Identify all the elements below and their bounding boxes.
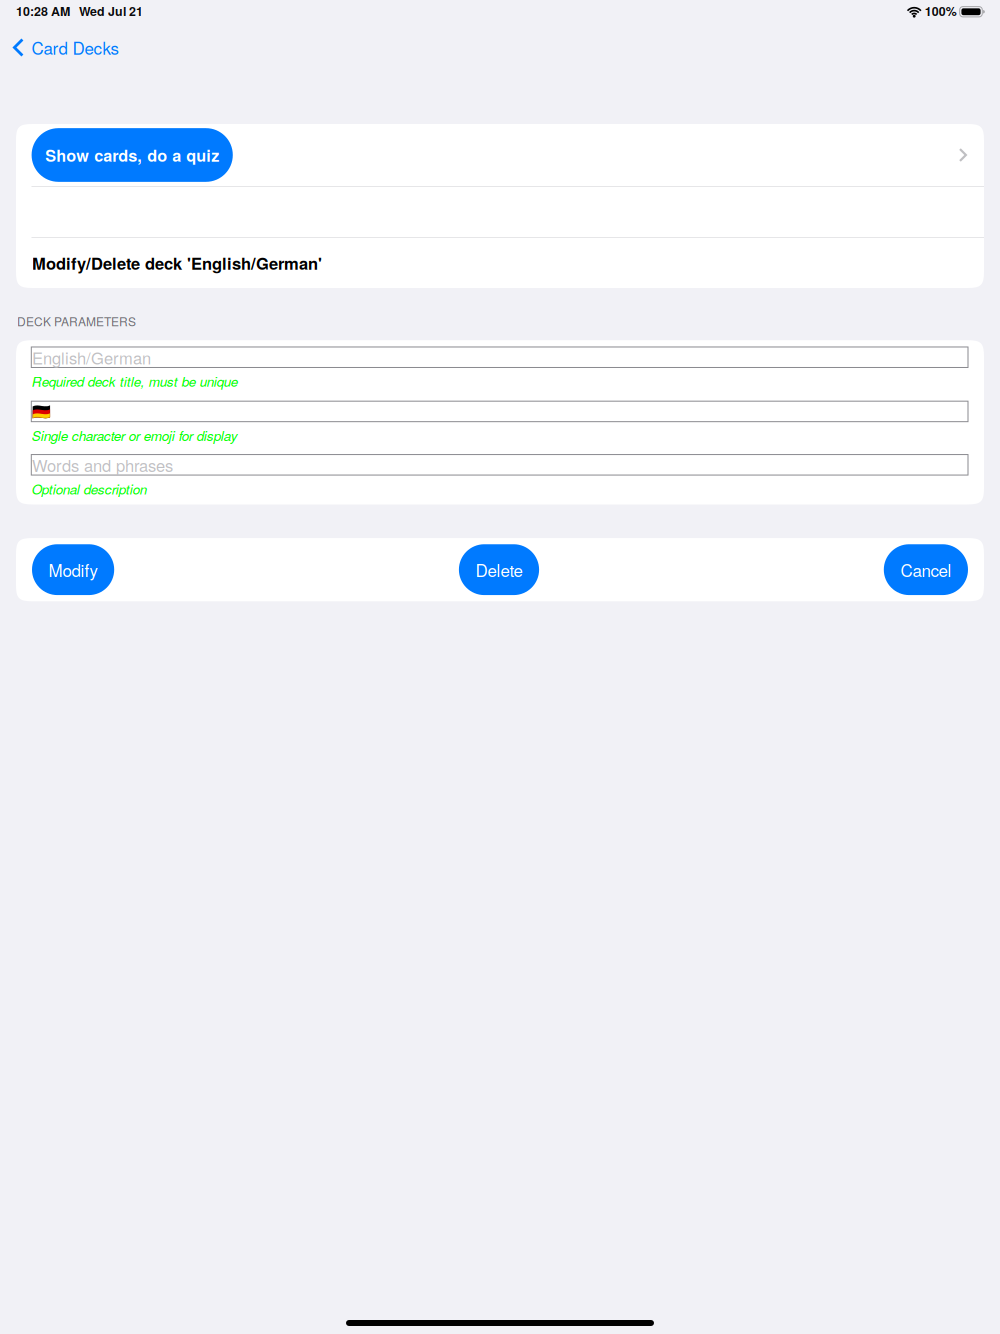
staticText: 100% (925, 2, 957, 20)
staticText: DECK PARAMETERS (17, 312, 136, 330)
staticText: English/German (32, 345, 151, 369)
staticText: 🇩🇪 (32, 403, 51, 420)
staticText: Words and phrases (32, 453, 173, 477)
staticText: Cancel (900, 557, 951, 582)
staticText: Modify (49, 557, 98, 582)
staticText: Required deck title, must be unique (32, 372, 238, 391)
button[interactable]: Cancel (884, 544, 968, 595)
staticText: Delete (475, 557, 522, 582)
button[interactable]: Delete (459, 544, 539, 595)
button[interactable]: Show cards, do a quiz (16, 124, 984, 186)
staticText: 10:28 AM Wed Jul 21 (16, 2, 143, 20)
staticText: Modify/Delete deck 'English/German' (32, 251, 322, 275)
staticText: Show cards, do a quiz (45, 143, 219, 167)
button[interactable]: Card Decks (0, 21, 131, 67)
staticText: Card Decks (32, 35, 119, 60)
button[interactable]: Modify (32, 544, 114, 595)
staticText: Single character or emoji for display (32, 426, 238, 445)
staticText: Optional description (32, 479, 147, 498)
